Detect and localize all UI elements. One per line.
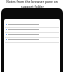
- button[interactable]: [4, 23, 60, 28]
- staticText: Notes from the browser pane on: [6, 0, 58, 4]
- button[interactable]: [4, 33, 60, 38]
- button[interactable]: [4, 28, 60, 33]
- staticText: support folder: [21, 5, 44, 8]
- button[interactable]: [4, 38, 60, 43]
